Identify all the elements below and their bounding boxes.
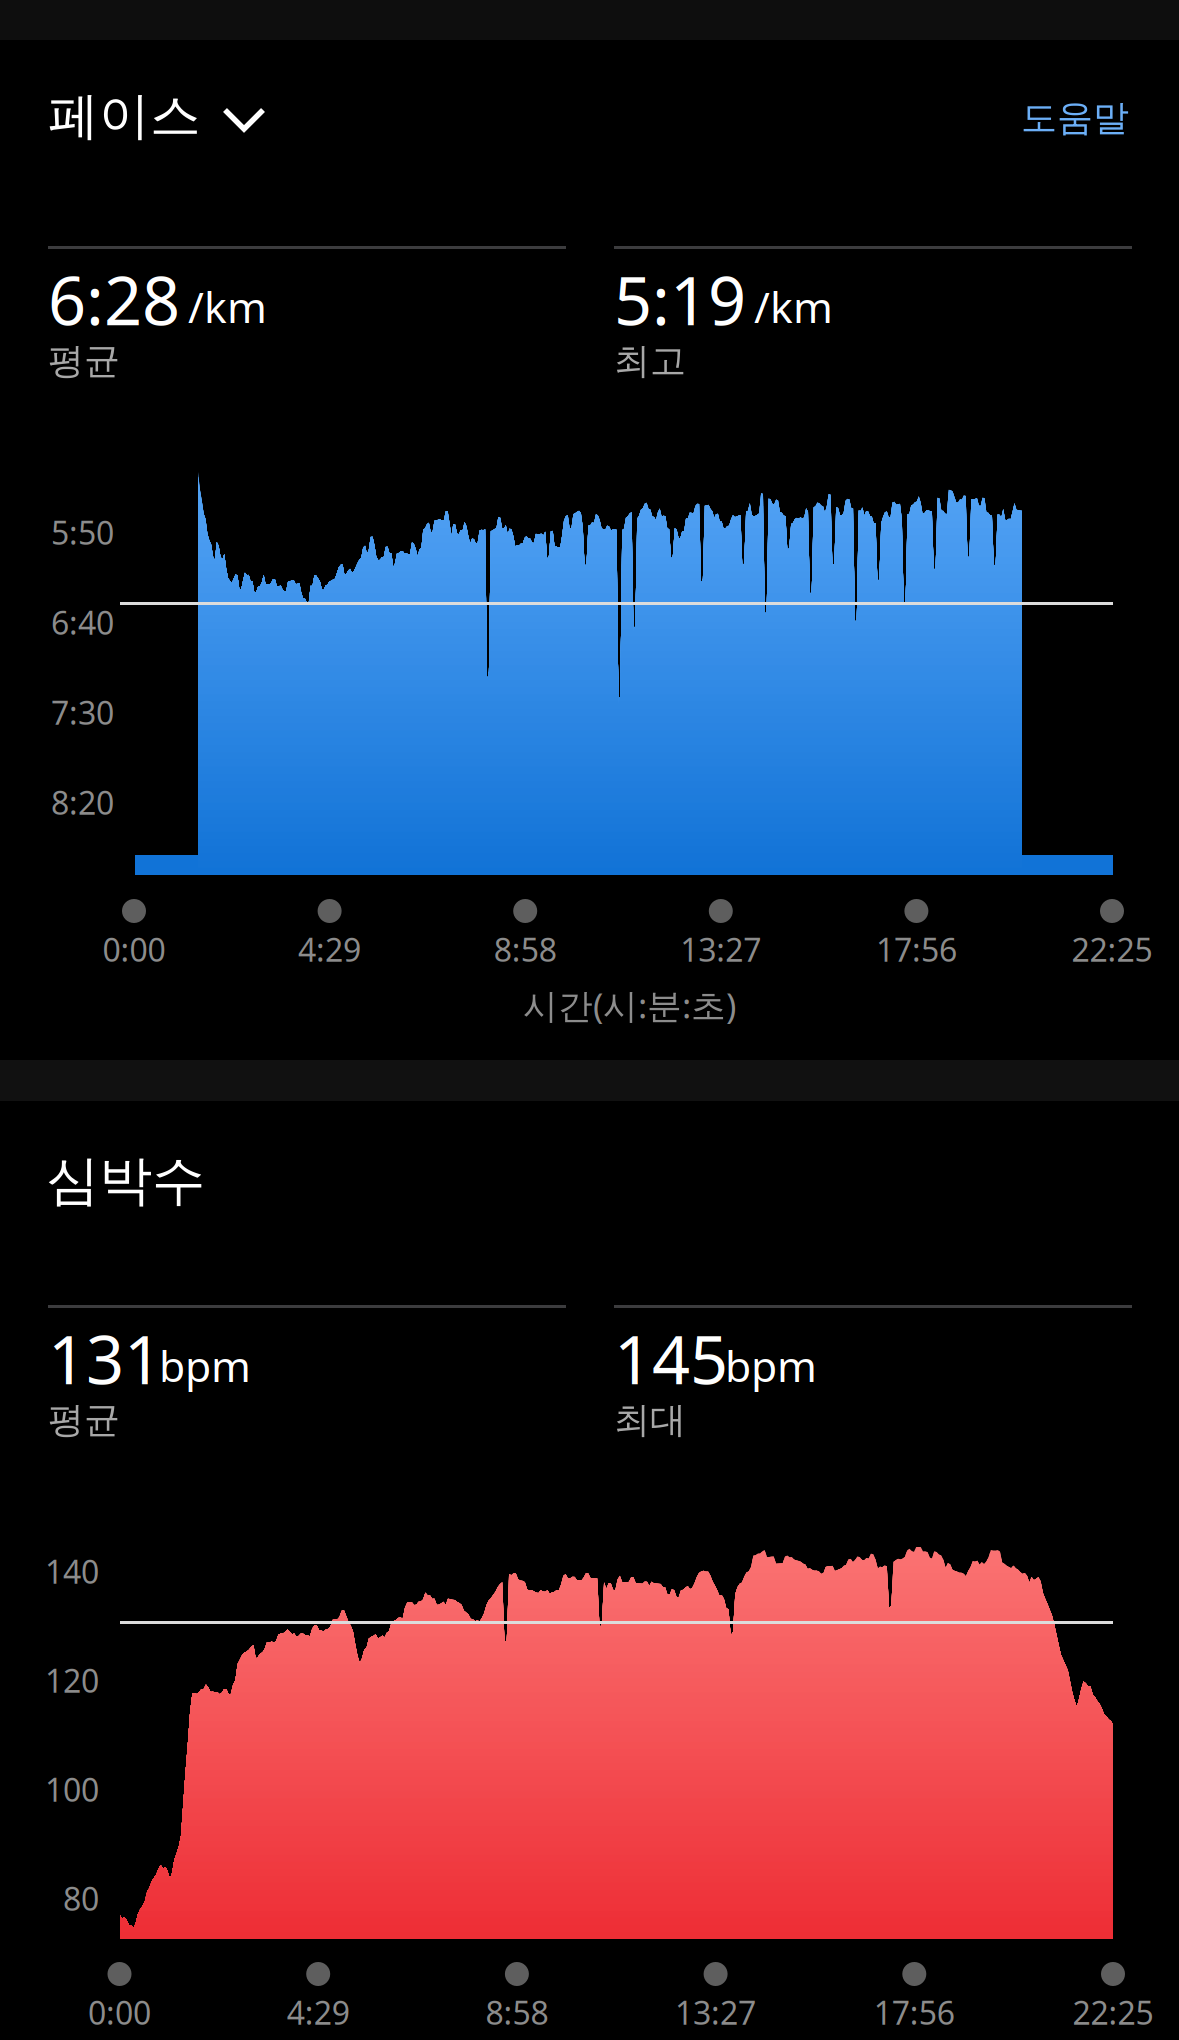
staticText: /km bbox=[188, 278, 267, 335]
staticText: 13:27 bbox=[680, 928, 761, 970]
staticText: 8:58 bbox=[494, 928, 557, 970]
staticText: 6:40 bbox=[51, 601, 114, 643]
staticText: 120 bbox=[45, 1659, 99, 1701]
staticText: 4:29 bbox=[298, 928, 361, 970]
staticText: 5:50 bbox=[51, 511, 114, 553]
staticText: 시간(시:분:초) bbox=[523, 982, 736, 1028]
staticText: 22:25 bbox=[1071, 928, 1152, 970]
staticText: 심박수 bbox=[46, 1148, 205, 1213]
staticText: 0:00 bbox=[88, 1991, 151, 2033]
staticText: 80 bbox=[63, 1877, 99, 1919]
staticText: bpm bbox=[725, 1337, 817, 1394]
staticText: 6:28 bbox=[48, 255, 180, 343]
staticText: 140 bbox=[45, 1550, 99, 1592]
staticText: 22:25 bbox=[1072, 1991, 1153, 2033]
staticText: 평균 bbox=[48, 339, 120, 383]
staticText: 17:56 bbox=[876, 928, 957, 970]
staticText: 최대 bbox=[614, 1398, 686, 1442]
staticText: 4:29 bbox=[287, 1991, 350, 2033]
staticText: 8:58 bbox=[485, 1991, 548, 2033]
button[interactable]: 도움말 bbox=[969, 78, 1129, 158]
button[interactable]: 페이스 bbox=[46, 78, 278, 158]
staticText: 5:19 bbox=[614, 255, 746, 343]
staticText: 13:27 bbox=[675, 1991, 756, 2033]
staticText: 100 bbox=[45, 1768, 99, 1810]
staticText: 8:20 bbox=[51, 781, 114, 823]
staticText: 최고 bbox=[614, 339, 686, 383]
staticText: /km bbox=[754, 278, 833, 335]
staticText: 0:00 bbox=[102, 928, 165, 970]
staticText: 평균 bbox=[48, 1398, 120, 1442]
staticText: 145 bbox=[614, 1314, 728, 1402]
staticText: bpm bbox=[159, 1337, 251, 1394]
staticText: 페이스 bbox=[48, 85, 201, 147]
staticText: 7:30 bbox=[51, 691, 114, 733]
staticText: 131 bbox=[48, 1314, 162, 1402]
staticText: 17:56 bbox=[874, 1991, 955, 2033]
staticText: 도움말 bbox=[1021, 96, 1129, 140]
